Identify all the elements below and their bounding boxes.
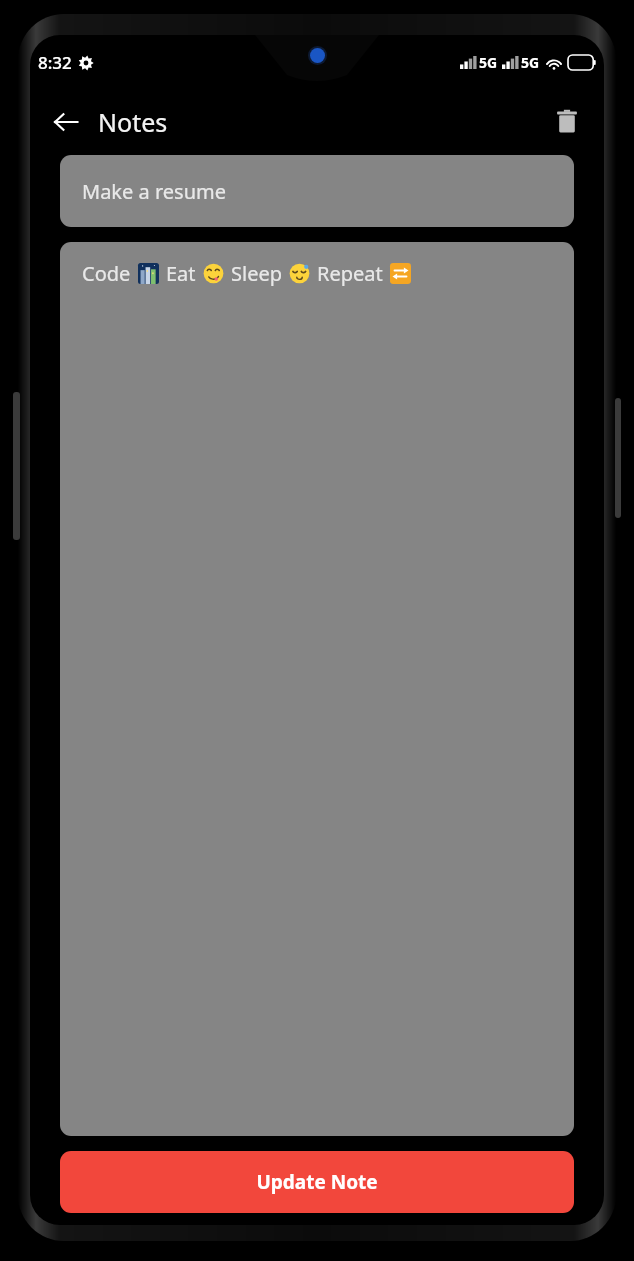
staticText: Code [82,260,131,287]
staticText: Update Note [256,1169,378,1195]
staticText: 8:32 [38,51,72,74]
staticText: Eat [166,260,196,287]
staticText: 5G [521,53,540,72]
staticText: Notes [98,105,168,139]
button[interactable]: Code [60,242,574,1136]
button[interactable]: Delete note [544,99,590,145]
staticText: Repeat [317,260,383,287]
button[interactable]: Back [44,100,88,144]
staticText: Make a resume [82,178,226,205]
staticText: 5G [479,53,498,72]
button[interactable]: Make a resume [60,155,574,227]
button[interactable]: Update Note [60,1151,574,1213]
staticText: Sleep [231,260,282,287]
